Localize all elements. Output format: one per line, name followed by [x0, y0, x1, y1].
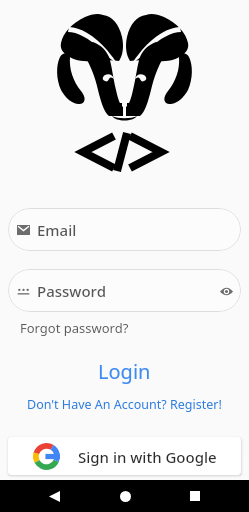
- button[interactable]: Recents: [179, 480, 211, 512]
- button[interactable]: Show password: [211, 276, 241, 306]
- button[interactable]: Don't Have An Account? Register!: [0, 396, 249, 413]
- button[interactable]: Email: [8, 208, 241, 251]
- button[interactable]: Back: [38, 480, 70, 512]
- button[interactable]: Login: [0, 358, 249, 385]
- staticText: Don't Have An Account? Register!: [27, 396, 222, 413]
- button[interactable]: Sign in with Google: [8, 437, 241, 475]
- staticText: Forgot password?: [20, 319, 129, 337]
- staticText: Email: [37, 220, 77, 240]
- button[interactable]: Home: [109, 480, 141, 512]
- staticText: Login: [98, 358, 151, 385]
- staticText: Sign in with Google: [78, 447, 217, 467]
- staticText: Password: [37, 281, 106, 301]
- button[interactable]: Forgot password?: [20, 319, 129, 337]
- button[interactable]: Password: [8, 269, 241, 312]
